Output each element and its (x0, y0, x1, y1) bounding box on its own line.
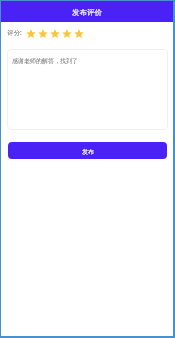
button[interactable]: Rate 4 stars (62, 28, 74, 39)
staticText: 感谢老师的解答，找到了 (12, 57, 78, 65)
staticText: 评分: (7, 28, 22, 37)
button[interactable]: 感谢老师的解答，找到了 (7, 49, 168, 130)
staticText: 发布 (82, 148, 94, 156)
button[interactable]: Rate 1 stars (26, 28, 38, 39)
button[interactable]: 发布 (8, 142, 167, 159)
button[interactable]: Rate 3 stars (50, 28, 62, 39)
button[interactable]: Rate 2 stars (38, 28, 50, 39)
button[interactable]: Rate 5 stars (74, 28, 86, 39)
staticText: 发布评价 (72, 8, 102, 17)
